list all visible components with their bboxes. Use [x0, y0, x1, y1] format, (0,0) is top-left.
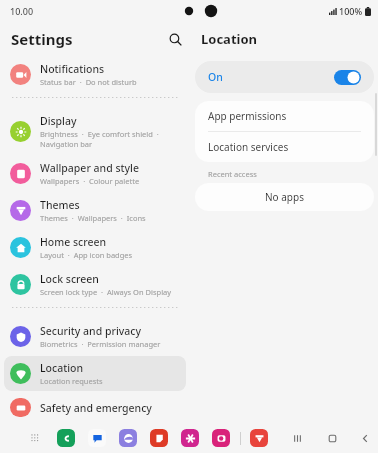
staticText: Home screen: [40, 235, 107, 249]
button[interactable]: Internet: [117, 427, 139, 449]
button[interactable]: On: [195, 61, 374, 93]
button[interactable]: Location: [4, 356, 186, 391]
staticText: Notifications: [40, 62, 105, 76]
button[interactable]: Phone: [55, 427, 77, 449]
button[interactable]: Search settings: [163, 27, 187, 51]
staticText: Brightness · Eye comfort shield ·: [40, 129, 159, 139]
staticText: Security and privacy: [40, 324, 141, 338]
staticText: Layout · App icon badges: [40, 250, 133, 260]
button[interactable]: No apps: [195, 183, 374, 211]
staticText: Wallpapers · Colour palette: [40, 176, 140, 186]
staticText: Recent access: [208, 169, 257, 179]
staticText: Location: [40, 361, 84, 375]
button[interactable]: Notes: [148, 427, 170, 449]
staticText: No apps: [265, 190, 304, 204]
staticText: Biometrics · Permission manager: [40, 339, 161, 349]
button[interactable]: Notifications: [4, 57, 186, 92]
button[interactable]: Back: [354, 427, 376, 449]
button[interactable]: All apps: [26, 429, 44, 447]
button[interactable]: Recent apps: [286, 427, 308, 449]
button[interactable]: Themes: [4, 193, 186, 228]
staticText: Themes · Wallpapers · Icons: [40, 213, 146, 223]
staticText: Location: [201, 30, 257, 48]
button[interactable]: Camera: [210, 427, 232, 449]
button[interactable]: Safety and emergency: [4, 393, 186, 422]
staticText: App permissions: [208, 109, 287, 123]
button[interactable]: Display: [4, 109, 186, 154]
button[interactable]: App permissions: [195, 101, 374, 131]
staticText: Location services: [208, 140, 289, 154]
staticText: Display: [40, 114, 77, 128]
button[interactable]: Settings app: [248, 427, 270, 449]
button[interactable]: Location services: [195, 132, 374, 162]
staticText: Settings: [11, 29, 73, 49]
staticText: Wallpaper and style: [40, 161, 139, 175]
staticText: 10.00: [10, 5, 34, 17]
staticText: Status bar · Do not disturb: [40, 77, 137, 87]
button[interactable]: Wallpaper and style: [4, 156, 186, 191]
staticText: Location requests: [40, 376, 103, 386]
button[interactable]: Gallery: [179, 427, 201, 449]
staticText: Screen lock type · Always On Display: [40, 287, 172, 297]
staticText: 100%: [339, 5, 363, 17]
button[interactable]: Home: [321, 427, 343, 449]
staticText: Navigation bar: [40, 139, 93, 149]
button[interactable]: Home screen: [4, 230, 186, 265]
staticText: Themes: [40, 198, 80, 212]
staticText: On: [208, 70, 223, 84]
button[interactable]: Messages: [86, 427, 108, 449]
button[interactable]: Lock screen: [4, 267, 186, 302]
staticText: Safety and emergency: [40, 401, 152, 415]
staticText: Lock screen: [40, 272, 99, 286]
button[interactable]: Security and privacy: [4, 319, 186, 354]
